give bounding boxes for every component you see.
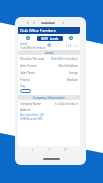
staticText: Club Office Furniture (20, 28, 56, 33)
staticText: Company Information (33, 96, 65, 100)
staticText: Le Club Furniture (55, 102, 78, 106)
button[interactable]: Home (48, 148, 51, 151)
staticText: Leads (45, 51, 54, 55)
button[interactable]: Tag (18, 83, 80, 95)
button[interactable]: Address (20, 107, 78, 121)
button[interactable]: Sales Team (18, 69, 80, 76)
button[interactable]: Company Information (18, 95, 80, 100)
button[interactable]: Describe The Lead (18, 55, 80, 62)
staticText: Europe (68, 71, 78, 75)
staticText: Rue Léon-Dierx 128 (20, 113, 44, 117)
staticText: Mitchell Admin (58, 64, 78, 68)
button[interactable]: Back (31, 148, 34, 151)
staticText: Club Office Furniture (50, 57, 78, 61)
staticText: Sales Team (20, 71, 35, 75)
button[interactable]: Search (69, 36, 73, 40)
button[interactable]: Club Office Furniture (18, 27, 80, 34)
button[interactable]: Sales Person (18, 62, 80, 69)
button[interactable]: Share (47, 43, 51, 47)
button[interactable]: NEW Leads (37, 36, 63, 41)
button[interactable]: Priority (18, 76, 80, 83)
staticText: Sales Person (20, 64, 37, 68)
button[interactable]: Recents (64, 148, 67, 151)
staticText: Priority (20, 78, 30, 82)
staticText: Describe The Lead (20, 57, 45, 61)
button[interactable]: Leads (18, 50, 80, 55)
button[interactable]: Settings (26, 36, 30, 40)
staticText: 1 / 5 (66, 44, 72, 48)
staticText: Address (20, 108, 31, 112)
staticText: Medium (67, 78, 78, 82)
staticText: Tag (20, 84, 25, 88)
staticText: Club Office Furniture (20, 46, 46, 50)
staticText: Leads (20, 42, 28, 46)
staticText: NEW Leads (41, 37, 59, 41)
staticText: Company Name (20, 102, 42, 106)
staticText: 1000 Brussels 9VH (20, 117, 43, 121)
button[interactable]: Company Name (18, 100, 80, 107)
